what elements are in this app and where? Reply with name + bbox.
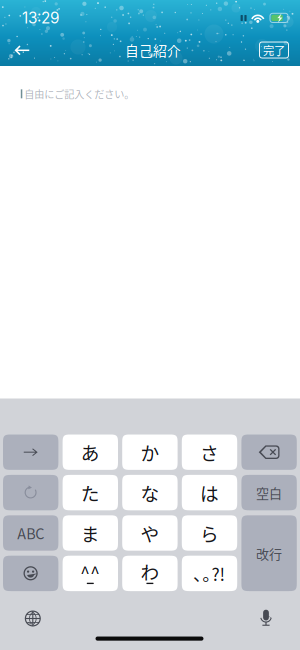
button[interactable]: ら [182, 515, 237, 551]
staticText: や [140, 519, 159, 546]
staticText: ､｡?! [193, 561, 225, 586]
button[interactable]: Next candidate [3, 434, 58, 470]
button[interactable]: Delete [241, 434, 297, 470]
staticText: は [200, 479, 219, 506]
staticText: か [140, 439, 159, 466]
button[interactable]: 完了 [254, 35, 294, 65]
button[interactable]: Undo [3, 475, 58, 510]
button[interactable]: な [122, 475, 178, 510]
staticText: わ [140, 558, 159, 585]
button[interactable]: ABC [3, 515, 58, 551]
button[interactable]: Emoji [3, 556, 58, 591]
staticText: ABC [17, 523, 44, 543]
staticText: 13:29 [22, 9, 60, 27]
staticText: あ [81, 439, 100, 466]
staticText: 改行 [256, 544, 282, 563]
button[interactable]: ^^ [63, 556, 118, 591]
staticText: ^^ [80, 559, 100, 584]
button[interactable]: や [122, 515, 178, 551]
staticText: た [81, 479, 100, 506]
staticText: ら [200, 519, 219, 546]
button[interactable]: Switch keyboard [16, 604, 50, 632]
button[interactable]: か [122, 434, 178, 470]
button[interactable]: た [63, 475, 118, 510]
staticText: 自己紹介 [125, 40, 181, 60]
button[interactable]: さ [182, 434, 237, 470]
staticText: さ [200, 439, 219, 466]
staticText: 空白 [256, 483, 282, 502]
button[interactable]: わ [122, 556, 178, 591]
button[interactable]: 空白 [241, 475, 297, 510]
button[interactable]: ま [63, 515, 118, 551]
staticText: ま [81, 519, 100, 546]
button[interactable]: 改行 [241, 515, 297, 591]
staticText: 自由にご記入ください。 [24, 86, 134, 101]
button[interactable]: Back [0, 30, 42, 70]
staticText: 完了 [263, 42, 285, 58]
button[interactable]: あ [63, 434, 118, 470]
button[interactable]: Dictation [249, 603, 283, 631]
button[interactable]: は [182, 475, 237, 510]
button[interactable]: ､｡?! [182, 556, 237, 591]
staticText: な [140, 479, 159, 506]
